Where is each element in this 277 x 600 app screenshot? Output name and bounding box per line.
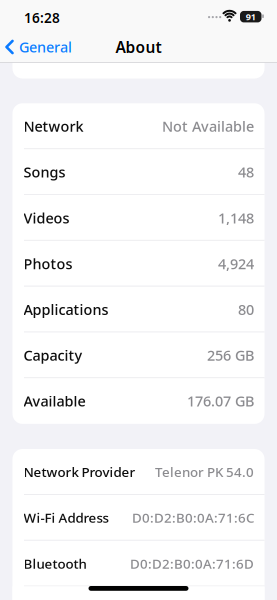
staticText: D0:D2:B0:0A:71:6D xyxy=(130,554,254,573)
staticText: Videos xyxy=(23,208,69,228)
staticText: 176.07 GB xyxy=(187,391,254,411)
staticText: Bluetooth xyxy=(23,554,86,573)
staticText: D0:D2:B0:0A:71:6C xyxy=(132,509,254,527)
staticText: 80 xyxy=(238,300,254,319)
staticText: Available xyxy=(23,391,85,411)
staticText: Network Provider xyxy=(23,463,135,481)
button[interactable]: Back to General xyxy=(0,32,72,62)
staticText: Photos xyxy=(23,254,72,273)
staticText: Songs xyxy=(23,162,65,182)
staticText: Applications xyxy=(23,300,108,319)
staticText: Telenor PK 54.0 xyxy=(155,463,254,481)
staticText: Network xyxy=(23,116,83,136)
staticText: Wi-Fi Address xyxy=(23,509,108,527)
staticText: 16:28 xyxy=(24,8,60,27)
staticText: 1,148 xyxy=(218,208,254,228)
staticText: Capacity xyxy=(23,345,82,365)
staticText: About xyxy=(115,36,161,58)
staticText: 48 xyxy=(238,162,254,182)
staticText: Not Available xyxy=(162,116,254,136)
staticText: 4,924 xyxy=(218,254,254,273)
staticText: 256 GB xyxy=(207,345,254,365)
staticText: 91 xyxy=(246,10,256,23)
staticText: General xyxy=(19,37,72,57)
